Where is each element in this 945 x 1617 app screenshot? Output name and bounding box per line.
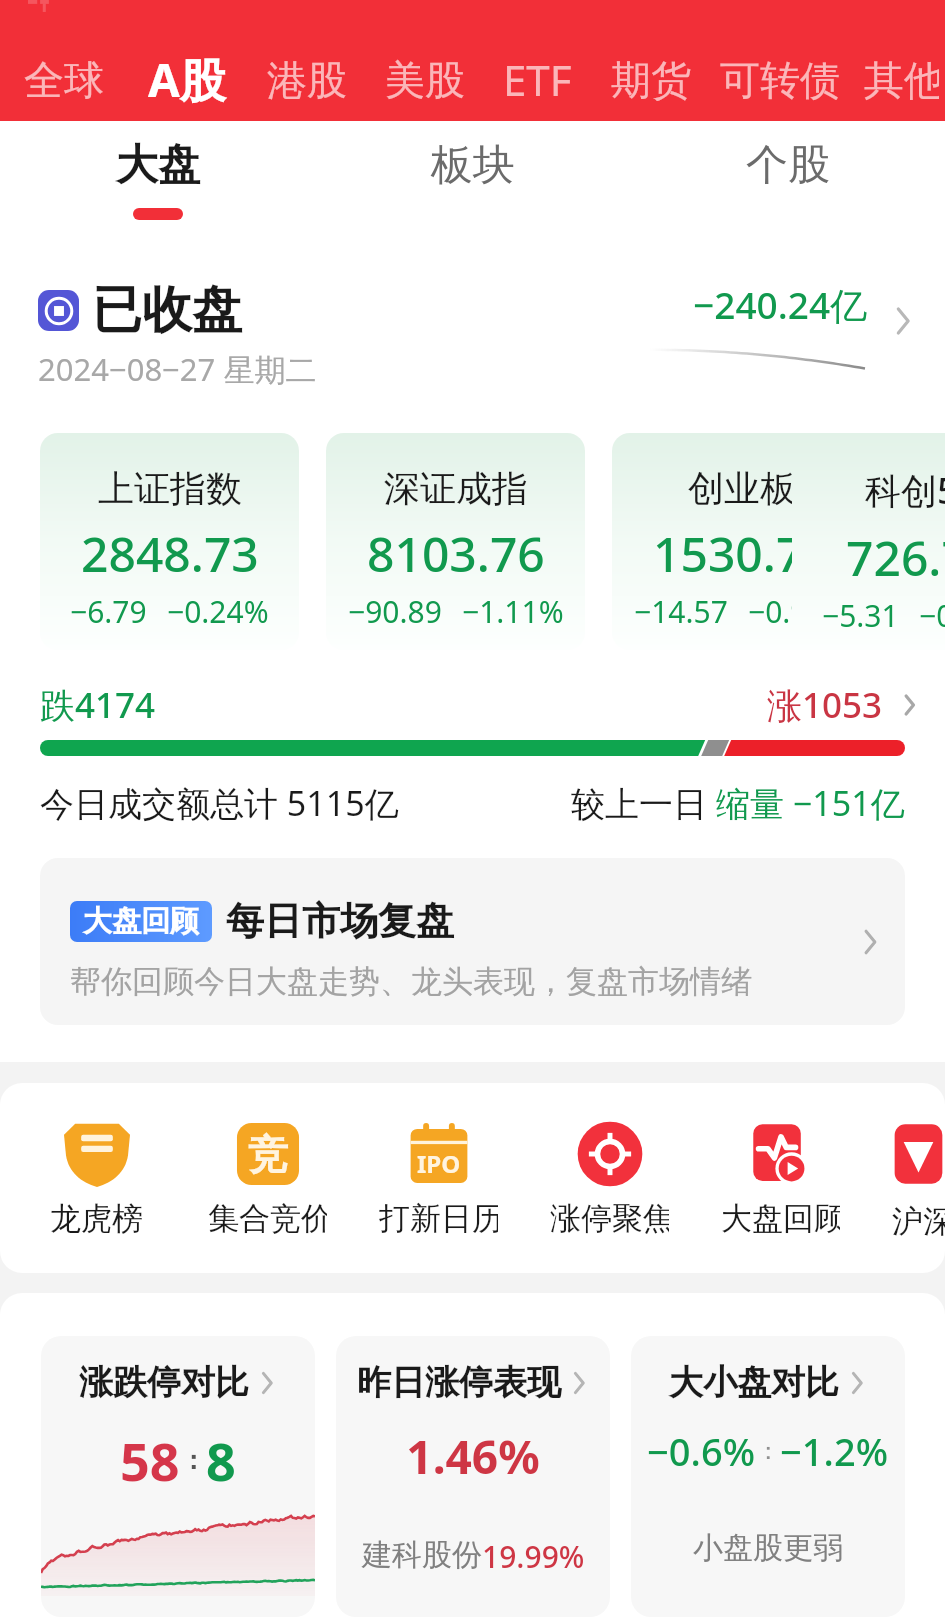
button[interactable]: 涨停聚焦 <box>550 1121 669 1238</box>
staticText: 8 <box>206 1425 236 1496</box>
staticText: 其他 <box>864 55 939 105</box>
staticText: 涨1053 <box>767 681 883 729</box>
staticText: 竞 <box>248 1129 288 1179</box>
staticText: 已收盘 <box>92 279 242 342</box>
button[interactable]: 龙虎榜 <box>37 1121 156 1238</box>
button[interactable]: 板块 <box>315 121 630 229</box>
staticText: 8103.76 <box>367 521 545 586</box>
staticText: 科创50 <box>865 466 945 515</box>
staticText: 今日成交额总计 5115亿 <box>40 780 399 826</box>
staticText: 美股 <box>385 55 465 105</box>
staticText: 港股 <box>267 55 347 105</box>
button[interactable]: 美股 <box>379 49 471 111</box>
button[interactable]: 其他 <box>858 49 945 111</box>
staticText: 期货 <box>611 55 691 105</box>
button[interactable]: 期货 <box>605 49 697 111</box>
staticText: −0.24% <box>167 591 269 632</box>
staticText: IPO <box>417 1147 461 1180</box>
staticText: 大小盘对比 <box>669 1361 839 1404</box>
staticText: ： <box>180 1444 206 1477</box>
button[interactable]: 沪深300 <box>892 1121 945 1241</box>
staticText: 每日市场复盘 <box>226 897 454 945</box>
button[interactable]: 涨跌停对比 <box>41 1336 315 1617</box>
button[interactable]: 港股 <box>261 49 353 111</box>
button[interactable]: 昨日涨停表现 <box>336 1336 610 1617</box>
button[interactable]: 大小盘对比 <box>631 1336 905 1617</box>
staticText: 涨跌停对比 <box>79 1361 249 1404</box>
staticText: −1.11% <box>462 591 564 632</box>
staticText: 建科股份 <box>362 1536 482 1574</box>
staticText: 涨停聚焦 <box>550 1199 669 1238</box>
staticText: A股 <box>148 48 226 111</box>
staticText: 19.99% <box>482 1536 585 1577</box>
staticText: 龙虎榜 <box>50 1199 143 1238</box>
staticText: −14.57 <box>634 591 728 632</box>
staticText: 较上一日 <box>571 780 716 826</box>
staticText: −240.24亿 <box>693 279 868 330</box>
staticText: 上证指数 <box>98 466 242 511</box>
button[interactable]: IPO <box>379 1121 498 1238</box>
button[interactable]: 个股 <box>630 121 945 229</box>
button[interactable]: 科创50 <box>792 433 945 650</box>
staticText: 726.70 <box>846 525 945 590</box>
staticText: 跌4174 <box>40 681 156 729</box>
staticText: 沪深300 <box>892 1199 945 1241</box>
staticText: −6.79 <box>70 591 147 632</box>
button[interactable]: ETF <box>497 45 578 114</box>
staticText: 大盘回顾 <box>83 903 199 940</box>
button[interactable]: 创业板 <box>612 433 871 650</box>
staticText: 1530.74 <box>653 521 831 586</box>
staticText: 缩量 −151亿 <box>716 780 905 826</box>
staticText: 大盘回顾 <box>721 1199 840 1238</box>
button[interactable]: 可转债 <box>714 49 846 111</box>
staticText: −1.2% <box>780 1425 889 1477</box>
staticText: ETF <box>503 51 572 108</box>
staticText: 打新日历 <box>379 1199 498 1238</box>
staticText: 创业板 <box>688 466 796 511</box>
staticText: 2848.73 <box>81 521 259 586</box>
button[interactable]: 大盘回顾 <box>721 1121 840 1238</box>
button[interactable]: 大盘 <box>0 121 315 229</box>
button[interactable]: 跌4174 <box>40 681 917 729</box>
staticText: 2024−08−27 星期二 <box>38 348 317 390</box>
button[interactable]: 竞 <box>208 1121 327 1238</box>
button[interactable]: 上证指数 <box>40 433 299 650</box>
button[interactable]: A股 <box>142 42 232 117</box>
staticText: −0.73% <box>919 595 945 636</box>
staticText: 全球 <box>24 55 104 105</box>
staticText: 个股 <box>746 139 830 192</box>
button[interactable]: 大盘回顾 <box>40 858 905 1025</box>
staticText: −5.31 <box>822 595 899 636</box>
staticText: −90.89 <box>348 591 442 632</box>
button[interactable]: 全球 <box>18 49 110 111</box>
staticText: 帮你回顾今日大盘走势、龙头表现，复盘市场情绪 <box>70 962 752 1001</box>
staticText: 58 <box>120 1425 180 1496</box>
staticText: ： <box>756 1436 780 1466</box>
staticText: −0.94% <box>748 591 850 632</box>
staticText: 1.46% <box>336 1425 610 1488</box>
staticText: 小盘股更弱 <box>631 1529 905 1567</box>
staticText: 板块 <box>431 139 515 192</box>
staticText: 深证成指 <box>384 466 528 511</box>
button[interactable]: 深证成指 <box>326 433 585 650</box>
staticText: 集合竞价 <box>208 1199 327 1238</box>
staticText: 可转债 <box>720 55 840 105</box>
staticText: 昨日涨停表现 <box>357 1361 561 1404</box>
staticText: −0.6% <box>647 1425 756 1477</box>
staticText: 大盘 <box>116 139 200 192</box>
